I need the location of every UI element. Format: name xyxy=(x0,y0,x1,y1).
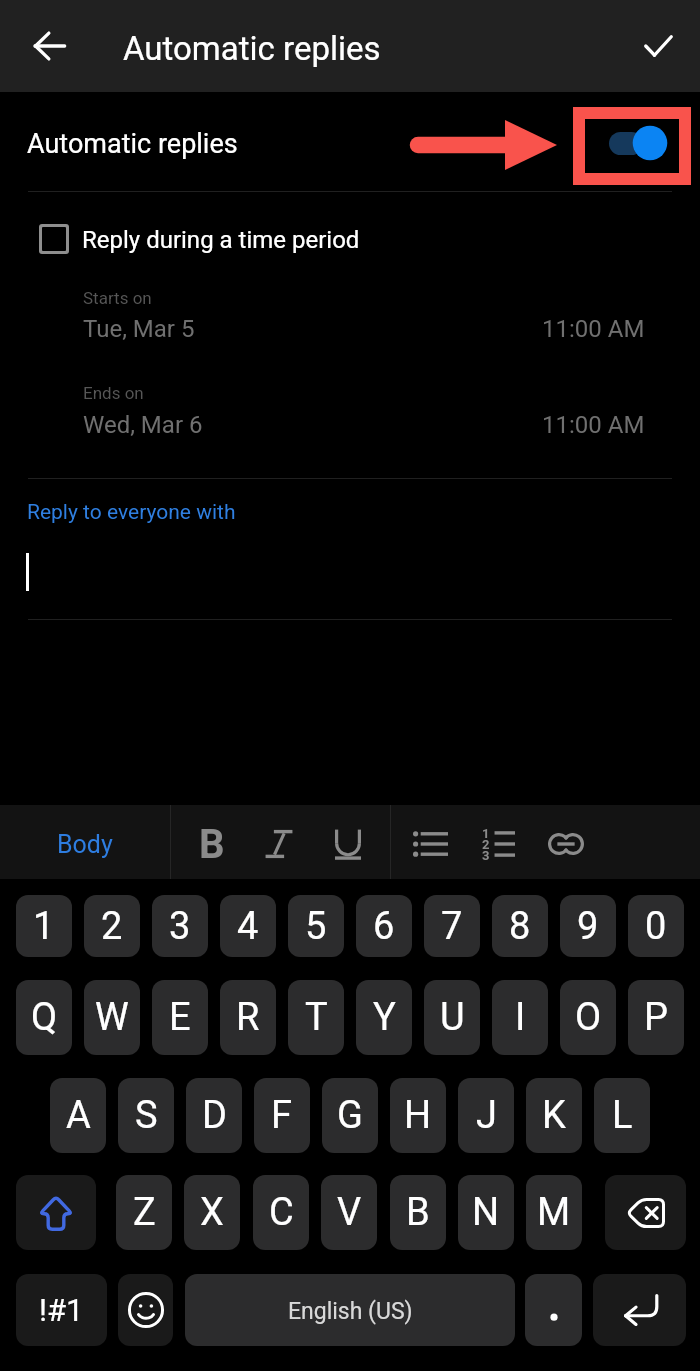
button[interactable]: Q xyxy=(16,980,72,1055)
staticText: E xyxy=(169,995,191,1040)
button[interactable] xyxy=(0,282,700,344)
button[interactable]: 2 xyxy=(84,895,140,957)
staticText: Tue, Mar 5 xyxy=(83,315,195,343)
button[interactable]: Emoji xyxy=(118,1274,173,1346)
staticText: 5 xyxy=(305,904,327,949)
staticText: !#1 xyxy=(39,1292,84,1328)
button[interactable] xyxy=(0,536,700,616)
button[interactable]: C xyxy=(253,1175,309,1250)
button[interactable]: Done xyxy=(627,15,689,77)
staticText: 0 xyxy=(645,904,667,949)
button[interactable]: 6 xyxy=(356,895,412,957)
button[interactable]: English (US) xyxy=(185,1274,515,1346)
staticText: B xyxy=(199,821,225,868)
button[interactable]: Bold xyxy=(182,814,242,874)
button[interactable]: 3 xyxy=(152,895,208,957)
button[interactable]: M xyxy=(526,1175,582,1250)
button[interactable] xyxy=(0,377,700,439)
button[interactable]: A xyxy=(50,1078,106,1153)
staticText: 3 xyxy=(169,904,191,949)
staticText: Automatic replies xyxy=(27,128,238,160)
button[interactable]: Body xyxy=(0,805,170,879)
button[interactable]: P xyxy=(628,980,684,1055)
staticText: 8 xyxy=(509,904,531,949)
button[interactable]: 5 xyxy=(288,895,344,957)
button[interactable]: Y xyxy=(356,980,412,1055)
button[interactable]: W xyxy=(84,980,140,1055)
staticText: M xyxy=(537,1190,571,1235)
staticText: Ends on xyxy=(83,383,144,403)
button[interactable]: S xyxy=(118,1078,174,1153)
staticText: N xyxy=(472,1190,500,1235)
staticText: 11:00 AM xyxy=(542,315,645,343)
button[interactable]: 9 xyxy=(560,895,616,957)
button[interactable]: I xyxy=(492,980,548,1055)
button[interactable]: 4 xyxy=(220,895,276,957)
staticText: H xyxy=(404,1093,432,1138)
staticText: I xyxy=(515,995,526,1040)
button[interactable]: F xyxy=(254,1078,310,1153)
button[interactable]: U xyxy=(424,980,480,1055)
staticText: D xyxy=(202,1093,227,1138)
button[interactable]: Enter xyxy=(593,1274,686,1346)
staticText: Q xyxy=(31,995,58,1040)
button[interactable]: Navigate up xyxy=(16,13,82,79)
button[interactable]: Numbered list xyxy=(468,814,528,874)
staticText: English (US) xyxy=(288,1298,413,1325)
staticText: Reply during a time period xyxy=(82,226,360,254)
staticText: 3 xyxy=(482,848,490,863)
staticText: 11:00 AM xyxy=(542,411,645,439)
staticText: Starts on xyxy=(83,288,152,308)
button[interactable]: O xyxy=(560,980,616,1055)
button[interactable]: J xyxy=(458,1078,514,1153)
button[interactable]: B xyxy=(390,1175,446,1250)
button[interactable]: 7 xyxy=(424,895,480,957)
button[interactable]: Insert link xyxy=(536,814,596,874)
staticText: Reply to everyone with xyxy=(27,500,236,525)
staticText: 2 xyxy=(482,837,490,852)
staticText: Y xyxy=(373,995,396,1040)
staticText: 7 xyxy=(441,904,463,949)
button[interactable]: Automatic replies switch xyxy=(605,124,669,162)
staticText: R xyxy=(236,995,260,1040)
button[interactable]: K xyxy=(526,1078,582,1153)
staticText: 4 xyxy=(237,904,259,949)
button[interactable]: Italic xyxy=(249,814,309,874)
button[interactable]: 0 xyxy=(628,895,684,957)
staticText: V xyxy=(337,1190,362,1235)
staticText: Wed, Mar 6 xyxy=(83,411,203,439)
staticText: W xyxy=(95,995,129,1040)
staticText: X xyxy=(200,1190,224,1235)
button[interactable]: 1 xyxy=(16,895,72,957)
button[interactable]: Underline xyxy=(318,814,378,874)
button[interactable]: !#1 xyxy=(16,1274,107,1346)
button[interactable]: X xyxy=(184,1175,240,1250)
staticText: U xyxy=(440,995,465,1040)
button[interactable]: H xyxy=(390,1078,446,1153)
staticText: 1 xyxy=(33,904,55,949)
button[interactable]: D xyxy=(186,1078,242,1153)
staticText: A xyxy=(66,1093,91,1138)
button[interactable]: V xyxy=(321,1175,377,1250)
staticText: 2 xyxy=(101,904,123,949)
button[interactable]: Backspace xyxy=(605,1175,686,1250)
button[interactable]: E xyxy=(152,980,208,1055)
staticText: Automatic replies xyxy=(123,29,381,68)
staticText: P xyxy=(644,995,668,1040)
button[interactable]: 8 xyxy=(492,895,548,957)
button[interactable]: Period xyxy=(525,1274,582,1346)
button[interactable]: Shift xyxy=(16,1175,96,1250)
staticText: L xyxy=(612,1093,633,1138)
button[interactable]: T xyxy=(288,980,344,1055)
staticText: T xyxy=(305,995,328,1040)
button[interactable]: R xyxy=(220,980,276,1055)
button[interactable]: Reply during a time period xyxy=(0,208,700,270)
button[interactable]: G xyxy=(322,1078,378,1153)
staticText: Body xyxy=(57,830,113,859)
button[interactable]: L xyxy=(594,1078,650,1153)
button[interactable]: N xyxy=(458,1175,514,1250)
button[interactable]: Automatic replies xyxy=(0,92,700,191)
button[interactable]: Z xyxy=(116,1175,172,1250)
staticText: 6 xyxy=(373,904,395,949)
button[interactable]: Bulleted list xyxy=(400,814,460,874)
